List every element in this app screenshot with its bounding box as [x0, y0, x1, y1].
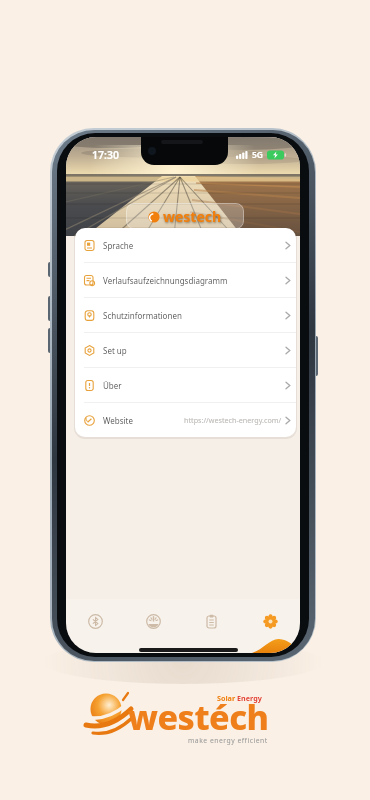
staticText: make energy efficient: [188, 736, 268, 745]
button[interactable]: Website: [75, 403, 296, 437]
staticText: 5G: [252, 149, 264, 161]
staticText: Schutzinformationen: [103, 310, 182, 321]
button[interactable]: [124, 613, 182, 630]
staticText: 17:30: [92, 148, 119, 162]
staticText: Energy: [237, 693, 262, 703]
button[interactable]: [66, 613, 124, 630]
staticText: Set up: [103, 345, 127, 356]
button[interactable]: Über: [75, 368, 296, 403]
button[interactable]: Set up: [75, 333, 296, 368]
staticText: https://westech-energy.com/: [184, 415, 282, 425]
button[interactable]: Verlaufsaufzeichnungsdiagramm: [75, 263, 296, 298]
staticText: westéch: [128, 694, 269, 740]
button[interactable]: Schutzinformationen: [75, 298, 296, 333]
button[interactable]: Sprache: [75, 228, 296, 263]
staticText: Verlaufsaufzeichnungsdiagramm: [103, 275, 228, 286]
staticText: westech: [163, 207, 222, 226]
button[interactable]: [241, 613, 300, 630]
staticText: Über: [103, 380, 122, 391]
staticText: Sprache: [103, 240, 134, 251]
button[interactable]: [182, 613, 241, 630]
staticText: Website: [103, 415, 134, 426]
staticText: Solar: [217, 693, 237, 703]
